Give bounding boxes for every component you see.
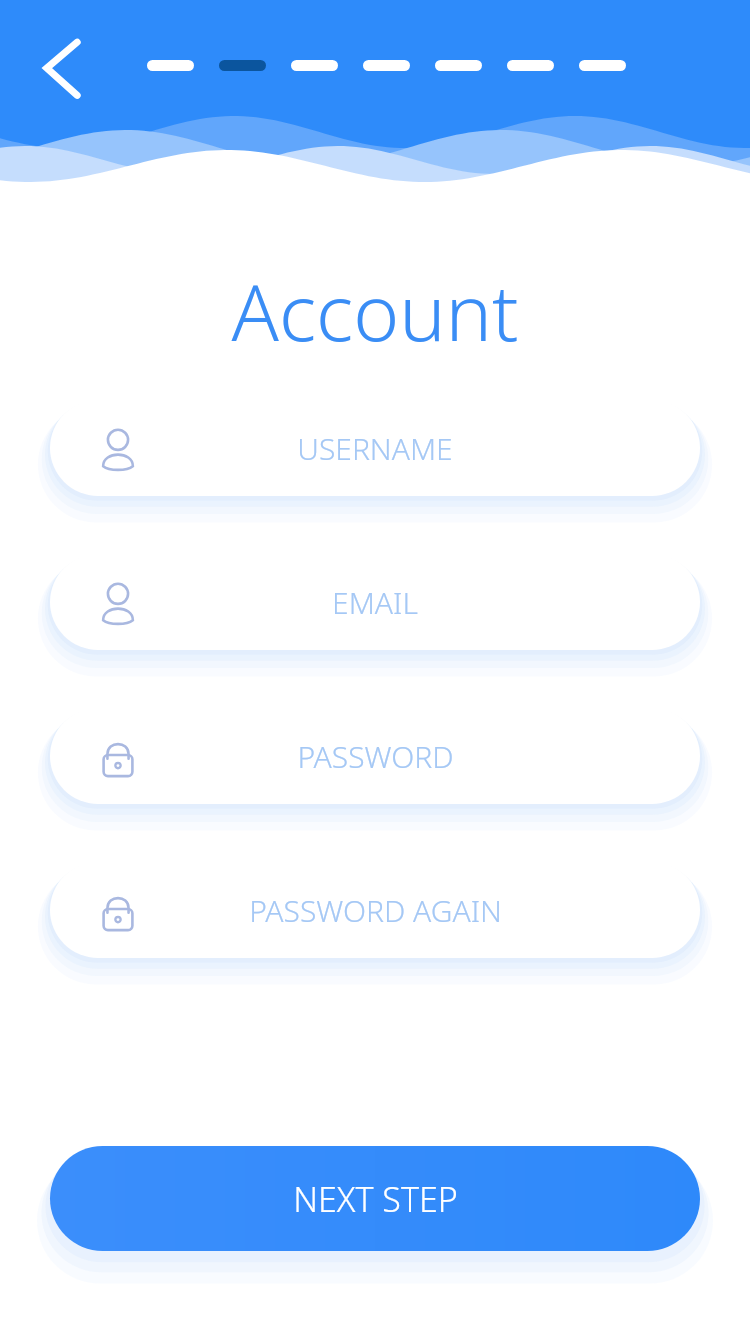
button[interactable]: EMAIL xyxy=(50,554,700,650)
staticText: PASSWORD xyxy=(297,736,454,777)
staticText: USERNAME xyxy=(297,428,453,469)
button[interactable]: USERNAME xyxy=(50,400,700,496)
staticText: PASSWORD AGAIN xyxy=(249,890,502,931)
button[interactable]: Back xyxy=(24,30,100,106)
staticText: NEXT STEP xyxy=(293,1176,458,1222)
staticText: Account xyxy=(231,258,519,364)
button[interactable]: PASSWORD xyxy=(50,708,700,804)
button[interactable]: PASSWORD AGAIN xyxy=(50,862,700,958)
staticText: EMAIL xyxy=(332,582,418,623)
button[interactable]: NEXT STEP xyxy=(50,1146,700,1251)
